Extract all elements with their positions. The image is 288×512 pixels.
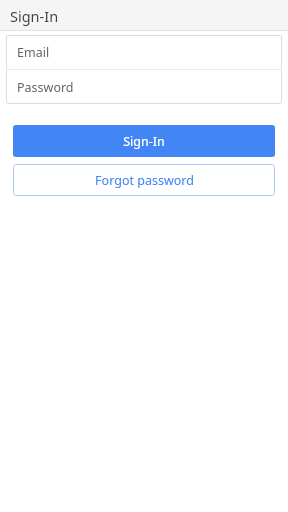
button[interactable]: Forgot password bbox=[13, 164, 275, 196]
button[interactable]: Password bbox=[6, 70, 282, 104]
staticText: Email bbox=[17, 44, 50, 61]
staticText: Sign-In bbox=[10, 6, 59, 26]
staticText: Password bbox=[17, 79, 74, 96]
button[interactable]: Sign-In bbox=[13, 125, 275, 157]
staticText: Sign-In bbox=[123, 133, 165, 150]
staticText: Forgot password bbox=[95, 172, 194, 189]
button[interactable]: Email bbox=[6, 35, 282, 69]
